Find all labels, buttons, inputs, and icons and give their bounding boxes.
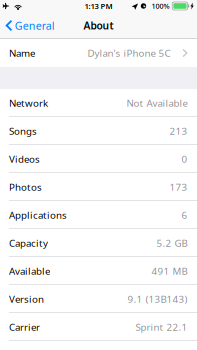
button[interactable]: Available (0, 257, 197, 285)
staticText: 173 (169, 180, 187, 194)
staticText: Version (9, 292, 44, 306)
staticText: Dylan's iPhone 5C (87, 46, 170, 60)
button[interactable]: Applications (0, 201, 197, 229)
staticText: 213 (169, 124, 187, 138)
staticText: 100% (152, 1, 170, 11)
button[interactable]: Carrier (0, 313, 197, 341)
staticText: Carrier (9, 320, 40, 334)
button[interactable]: Network (0, 89, 197, 117)
staticText: 0 (181, 152, 187, 166)
button[interactable]: General (0, 13, 61, 38)
button[interactable]: Name (0, 39, 197, 67)
staticText: 9.1 (13B143) (127, 292, 187, 306)
staticText: Applications (9, 208, 67, 222)
staticText: Name (9, 46, 35, 60)
staticText: Available (9, 264, 50, 278)
staticText: Photos (9, 180, 42, 194)
staticText: Sprint 22.1 (135, 320, 187, 334)
staticText: About (83, 18, 113, 32)
button[interactable]: Songs (0, 117, 197, 145)
button[interactable]: Videos (0, 145, 197, 173)
staticText: 6 (181, 208, 187, 222)
staticText: 1:13 PM (84, 1, 112, 11)
staticText: Videos (9, 152, 40, 166)
button[interactable]: Capacity (0, 229, 197, 257)
button[interactable]: Photos (0, 173, 197, 201)
staticText: 491 MB (151, 264, 187, 278)
staticText: Network (9, 96, 48, 110)
staticText: Capacity (9, 236, 48, 250)
button[interactable]: Version (0, 285, 197, 313)
staticText: 5.2 GB (156, 236, 187, 250)
staticText: Songs (9, 124, 37, 138)
staticText: Not Available (126, 96, 187, 110)
staticText: General (15, 18, 55, 33)
